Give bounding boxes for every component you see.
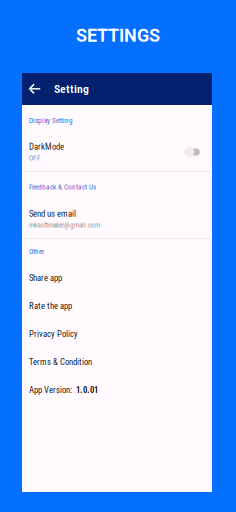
staticText: Rate the app [29, 301, 72, 311]
staticText: Terms & Condition [29, 357, 92, 367]
staticText: Share app [29, 273, 62, 283]
staticText: Feedback & Contact Us [29, 183, 96, 191]
staticText: mksoftmaker@gmail.com [29, 221, 100, 229]
staticText: SETTINGS [76, 25, 160, 46]
button[interactable]: Back [28, 73, 41, 105]
staticText: DarkMode [29, 142, 64, 152]
staticText: Send us email [29, 209, 76, 219]
button[interactable]: Rate the app [22, 292, 212, 320]
button[interactable]: Privacy Policy [22, 320, 212, 348]
staticText: OFF [29, 154, 41, 162]
staticText: Other [29, 247, 44, 256]
staticText: Privacy Policy [29, 329, 78, 339]
button[interactable]: DarkMode [22, 133, 212, 171]
staticText: Setting [54, 82, 89, 96]
button[interactable]: Dark mode, off [184, 145, 200, 159]
staticText: App Version: [29, 385, 72, 395]
button[interactable]: Terms & Condition [22, 348, 212, 376]
staticText: Display Setting [29, 116, 73, 125]
staticText: 1.0.01 [76, 385, 98, 395]
button[interactable]: Share app [22, 264, 212, 292]
button[interactable]: Send us email [22, 200, 212, 238]
